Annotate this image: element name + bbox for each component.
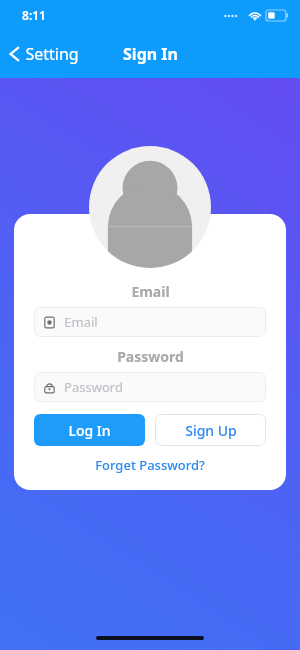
staticText: Password bbox=[117, 347, 184, 366]
staticText: Forget Password? bbox=[95, 456, 205, 474]
staticText: Log In bbox=[68, 421, 111, 440]
button[interactable]: Password bbox=[34, 372, 266, 402]
staticText: Sign Up bbox=[185, 421, 237, 440]
button[interactable]: Sign Up bbox=[155, 414, 266, 446]
staticText: Email bbox=[131, 282, 170, 301]
staticText: Email bbox=[64, 313, 98, 331]
staticText: Sign In bbox=[123, 43, 178, 65]
staticText: Password bbox=[64, 378, 123, 396]
button[interactable]: Email bbox=[34, 307, 266, 337]
staticText: 8:11 bbox=[22, 7, 46, 23]
button[interactable]: Forget Password? bbox=[89, 454, 211, 476]
button[interactable]: Setting bbox=[0, 37, 89, 71]
staticText: Setting bbox=[25, 43, 79, 65]
button[interactable]: Log In bbox=[34, 414, 145, 446]
